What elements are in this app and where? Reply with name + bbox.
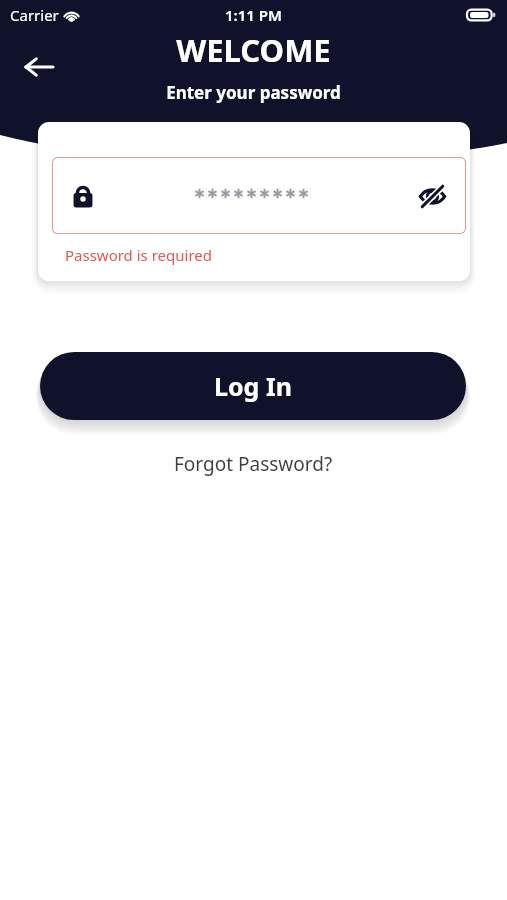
button[interactable]: Back bbox=[14, 43, 62, 91]
staticText: 1:11 PM bbox=[225, 5, 282, 25]
staticText: Carrier bbox=[10, 5, 59, 25]
staticText: Enter your password bbox=[166, 81, 341, 104]
staticText: WELCOME bbox=[176, 29, 331, 71]
button[interactable]: Forgot Password? bbox=[162, 445, 345, 483]
button[interactable]: Show password bbox=[52, 157, 466, 234]
button[interactable]: Log In bbox=[40, 352, 466, 420]
button[interactable]: Show password bbox=[412, 176, 452, 216]
staticText: Log In bbox=[214, 369, 292, 403]
staticText: Password is required bbox=[65, 245, 213, 265]
staticText: Forgot Password? bbox=[174, 451, 333, 477]
